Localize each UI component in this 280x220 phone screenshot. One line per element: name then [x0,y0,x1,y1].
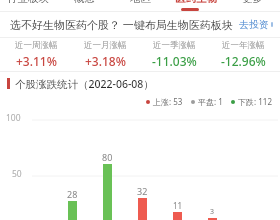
staticText: +3.18% [85,53,126,69]
staticText: -12.96% [221,53,266,69]
button[interactable]: 地区 [112,0,168,3]
button[interactable]: 近一年涨幅 [209,40,278,69]
staticText: 地区 [130,0,151,3]
staticText: 80 [102,151,113,163]
staticText: 更多 [242,0,263,3]
staticText: 100 [6,112,21,124]
button[interactable]: 80 [90,151,125,220]
staticText: 50 [12,168,22,180]
staticText: 32 [137,185,148,197]
staticText: 近一月涨幅 [84,40,127,51]
button[interactable]: 选不好生物医药个股？ 一键布局生物医药板块 [0,12,280,37]
button[interactable]: 28 [54,188,90,220]
staticText: 11 [173,200,183,211]
staticText: 下跌: 112 [238,96,272,107]
staticText: -11.03% [152,53,197,69]
staticText: 近一周涨幅 [15,40,58,51]
staticText: 行业板块 [7,0,49,3]
button[interactable]: 平盘: 1 [191,96,223,107]
button[interactable]: 医药生物 [168,0,224,3]
button[interactable]: 32 [125,185,160,220]
button[interactable]: 更多 [224,0,280,3]
staticText: 医药生物 [175,0,217,3]
staticText: 选不好生物医药个股？ 一键布局生物医药板块 [10,17,233,32]
button[interactable]: 11 [160,200,195,220]
button[interactable]: 上涨: 53 [146,96,183,107]
staticText: 概念 [74,0,95,3]
button[interactable]: 下跌: 112 [231,96,272,107]
staticText: 平盘: 1 [198,96,223,107]
button[interactable]: 近一月涨幅 [71,40,140,69]
staticText: 个股涨跌统计（2022-06-08） [15,77,154,91]
staticText: 近一年涨幅 [222,40,265,51]
staticText: 近一季涨幅 [153,40,196,51]
button[interactable]: 近一周涨幅 [2,40,71,69]
staticText: 上涨: 53 [153,96,183,107]
button[interactable]: 行业板块 [0,0,56,3]
staticText: 28 [67,188,78,200]
staticText: +3.11% [16,53,57,69]
staticText: 去投资 [239,18,269,31]
button[interactable]: 概念 [56,0,112,3]
button[interactable]: 3 [195,207,230,220]
button[interactable]: 近一季涨幅 [140,40,209,69]
staticText: 3 [210,207,215,217]
